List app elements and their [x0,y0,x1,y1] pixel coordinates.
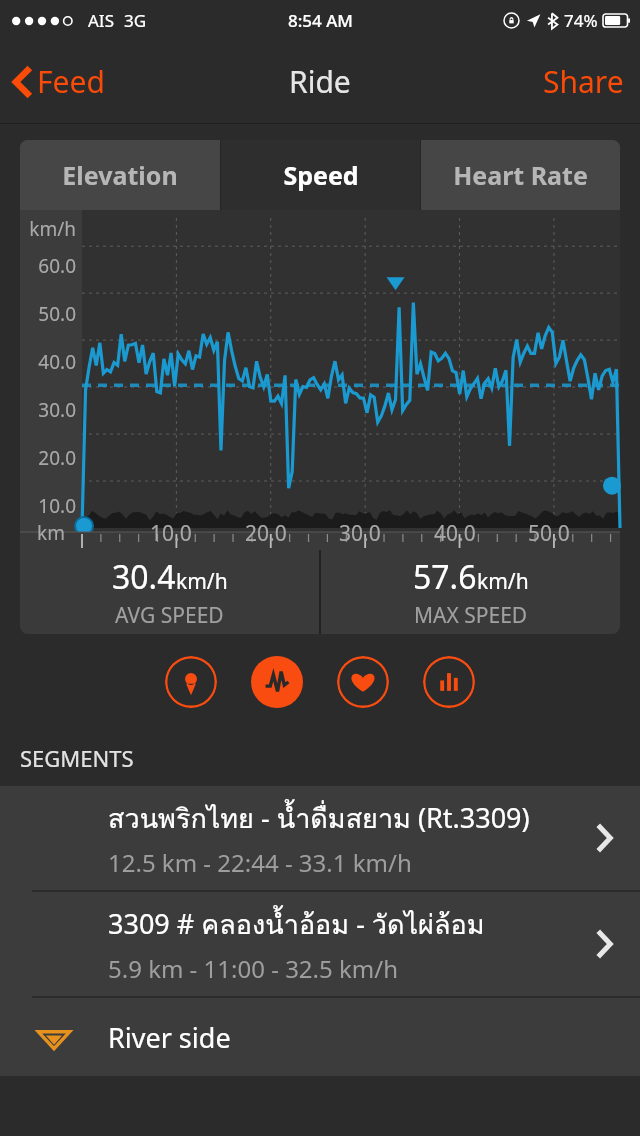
staticText: Speed [283,158,359,192]
staticText: 40.0 [20,349,76,375]
staticText: AVG SPEED [115,601,224,630]
staticText: 50.0 [528,519,570,548]
button[interactable]: Heart rate [337,656,389,708]
staticText: สวนพริกไทย - น้ำดื่มสยาม (Rt.3309) [108,797,530,840]
staticText: km/h [20,216,76,242]
staticText: 74% [564,9,598,32]
staticText: 60.0 [20,253,76,279]
staticText: km/h [477,567,529,596]
button[interactable]: Heart Rate [421,140,620,210]
staticText: 3G [124,9,147,32]
button[interactable]: Share [527,53,640,110]
staticText: 5.9 km - 11:00 - 32.5 km/h [108,952,399,985]
staticText: Ride [289,61,351,102]
staticText: 3309 # คลองน้ำอ้อม - วัดไผ่ล้อม [108,903,485,946]
staticText: MAX SPEED [414,601,528,630]
staticText: 57.6 [413,555,477,599]
staticText: AIS [88,9,114,32]
staticText: Share [543,61,624,102]
staticText: 40.0 [434,519,476,548]
staticText: 10.0 [20,493,76,519]
staticText: 30.4 [112,555,176,599]
staticText: km [37,520,65,546]
staticText: km/h [176,567,228,596]
button[interactable]: 57.6 [321,550,620,634]
button[interactable]: Feed [0,53,119,110]
staticText: 20.0 [20,445,76,471]
staticText: 10.0 [150,519,192,548]
button[interactable]: Speed graph [251,656,303,708]
staticText: 8:54 AM [288,9,353,32]
button[interactable]: Splits [423,656,475,708]
staticText: 20.0 [245,519,287,548]
button[interactable]: River side [0,998,640,1076]
staticText: Elevation [62,158,178,192]
button[interactable]: 3309 # คลองน้ำอ้อม - วัดไผ่ล้อม [0,892,640,996]
staticText: Heart Rate [453,158,588,192]
button[interactable]: สวนพริกไทย - น้ำดื่มสยาม (Rt.3309) [0,786,640,890]
button[interactable]: Map [165,656,217,708]
button[interactable]: 30.4 [20,550,319,634]
button[interactable]: Elevation [20,140,220,210]
staticText: 50.0 [20,301,76,327]
staticText: Feed [37,61,105,102]
staticText: 12.5 km - 22:44 - 33.1 km/h [108,846,412,879]
button[interactable]: Speed [221,140,420,210]
staticText: SEGMENTS [20,743,134,773]
staticText: 30.0 [20,397,76,423]
staticText: 30.0 [339,519,381,548]
staticText: River side [108,1019,231,1056]
